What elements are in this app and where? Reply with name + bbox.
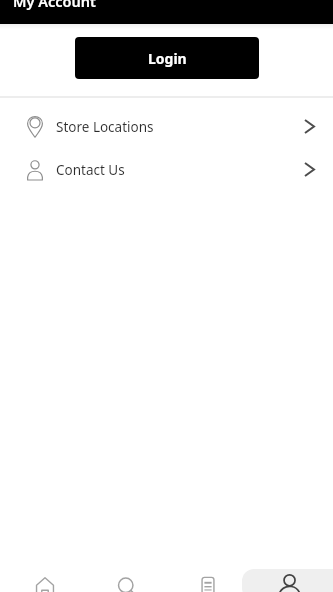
button[interactable]: Orders [167,552,248,592]
button[interactable]: Home [4,552,86,592]
button[interactable]: Store Locations [0,105,333,148]
button[interactable]: Login [75,37,259,79]
staticText: Login [148,49,187,68]
button[interactable]: Contact Us [0,148,333,191]
button[interactable]: Search [86,552,167,592]
staticText: Store Locations [56,118,154,136]
button[interactable]: Account [248,552,329,592]
staticText: Contact Us [56,161,125,179]
staticText: My Account [13,0,96,11]
